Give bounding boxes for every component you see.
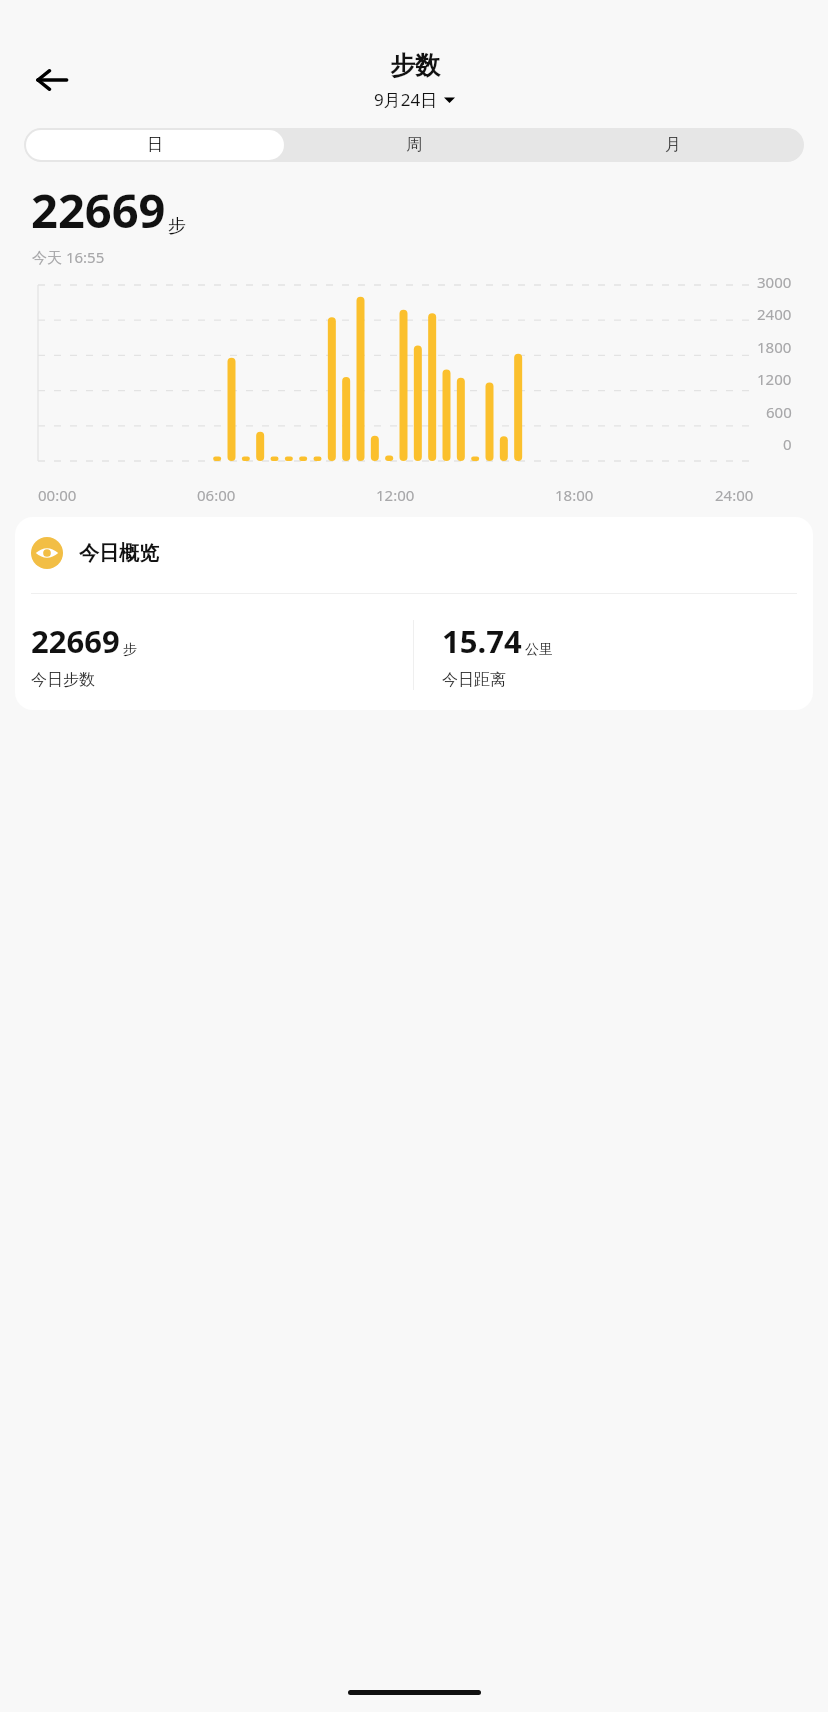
staticText: 9月24日 [374, 88, 438, 111]
staticText: 日 [147, 135, 163, 155]
button[interactable]: 9月24日 [374, 88, 455, 111]
staticText: 06:00 [197, 485, 236, 505]
staticText: 1800 [757, 337, 792, 357]
staticText: 15.74 [442, 620, 522, 662]
staticText: 月 [665, 135, 681, 155]
button[interactable]: 日 [26, 130, 284, 160]
staticText: 00:00 [38, 485, 77, 505]
staticText: 今日概览 [79, 541, 159, 566]
staticText: 步数 [390, 50, 440, 81]
staticText: 1200 [757, 369, 792, 389]
button[interactable]: 今日概览 [15, 517, 813, 710]
staticText: 公里 [525, 641, 553, 659]
staticText: 12:00 [376, 485, 415, 505]
staticText: 22669 [31, 620, 120, 662]
staticText: 今天 16:55 [32, 247, 105, 267]
staticText: 3000 [757, 272, 792, 292]
staticText: 步 [168, 215, 186, 238]
staticText: 2400 [757, 304, 792, 324]
staticText: 600 [766, 402, 792, 422]
staticText: 步 [123, 641, 137, 659]
staticText: 18:00 [555, 485, 594, 505]
button[interactable]: 周 [284, 130, 543, 160]
button[interactable]: Back [24, 52, 80, 108]
button[interactable]: 月 [543, 130, 802, 160]
staticText: 周 [406, 135, 422, 155]
staticText: 0 [783, 434, 792, 454]
staticText: 今日距离 [442, 670, 506, 690]
staticText: 今日步数 [31, 670, 95, 690]
staticText: 22669 [31, 178, 166, 242]
staticText: 24:00 [715, 485, 754, 505]
